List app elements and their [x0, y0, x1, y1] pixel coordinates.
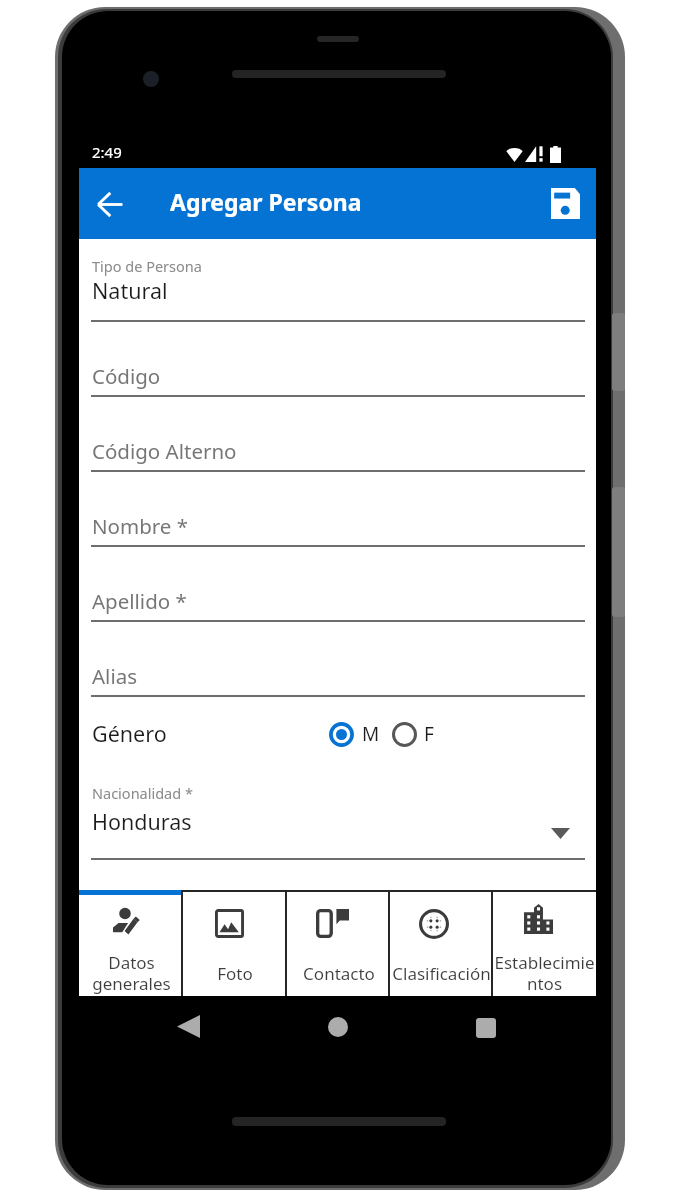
button[interactable]: Contacto [287, 890, 390, 996]
button[interactable]: Establecimie ntos [493, 890, 596, 996]
staticText: Tipo de Persona [92, 256, 202, 276]
button[interactable]: F [392, 721, 434, 747]
staticText: F [424, 721, 434, 747]
staticText: Alias [92, 662, 137, 690]
staticText: Clasificación [392, 962, 491, 985]
staticText: Datos generales [92, 951, 171, 995]
staticText: Agregar Persona [170, 186, 362, 217]
button[interactable]: Back [177, 1015, 200, 1038]
staticText: Código Alterno [92, 437, 237, 465]
staticText: Establecimie ntos [494, 951, 595, 995]
staticText: M [362, 721, 380, 747]
button[interactable]: Datos generales [79, 890, 183, 996]
staticText: 2:49 [92, 142, 122, 162]
staticText: Apellido * [92, 587, 187, 615]
staticText: Código [92, 362, 161, 390]
staticText: Honduras [92, 807, 192, 836]
button[interactable]: Save [539, 177, 591, 229]
button[interactable]: Home [328, 1017, 348, 1037]
button[interactable]: M [329, 721, 380, 747]
staticText: Género [92, 719, 167, 748]
staticText: Nombre * [92, 512, 189, 540]
staticText: Natural [92, 276, 168, 305]
staticText: Contacto [303, 962, 375, 985]
staticText: Nacionalidad * [92, 783, 193, 803]
staticText: Foto [217, 962, 253, 985]
button[interactable]: Recent apps [476, 1018, 496, 1038]
button[interactable]: Foto [183, 890, 287, 996]
button[interactable]: Clasificación [390, 890, 493, 996]
button[interactable]: Back [83, 178, 135, 230]
